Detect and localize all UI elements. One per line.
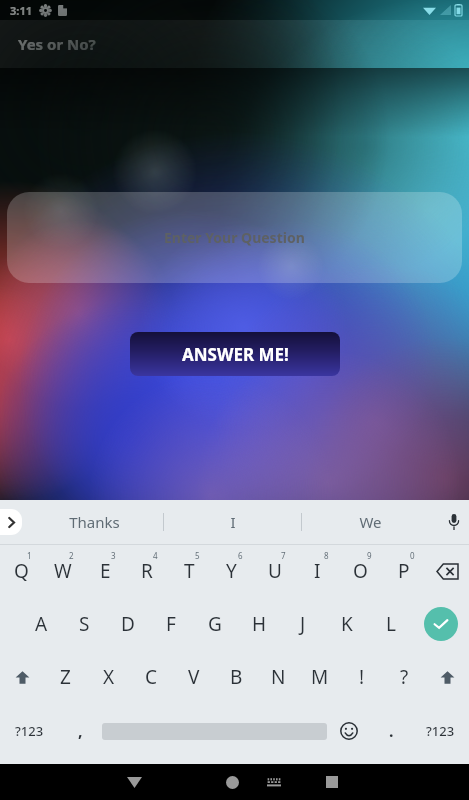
staticText: G (208, 611, 222, 637)
staticText: B (230, 664, 243, 690)
staticText: 3:11 (10, 3, 32, 18)
button[interactable]: T (168, 545, 210, 597)
staticText: 6 (238, 550, 243, 561)
button[interactable]: J (281, 597, 325, 651)
button[interactable]: L (369, 597, 413, 651)
staticText: Enter Your Question (164, 228, 305, 247)
staticText: F (166, 611, 176, 637)
button[interactable]: I (164, 500, 301, 544)
staticText: ?123 (426, 722, 455, 740)
button[interactable]: Home (216, 766, 248, 798)
button[interactable]: Thanks (26, 500, 163, 544)
button[interactable]: U (253, 545, 296, 597)
staticText: S (79, 611, 90, 637)
staticText: C (145, 664, 158, 690)
button[interactable]: G (193, 597, 237, 651)
button[interactable]: Back (118, 766, 150, 798)
staticText: M (311, 664, 329, 690)
staticText: , (78, 720, 83, 742)
button[interactable]: Expand suggestions (0, 509, 22, 535)
button[interactable]: I (296, 545, 339, 597)
button[interactable]: , (58, 703, 102, 759)
button[interactable]: H (237, 597, 281, 651)
staticText: 1 (27, 550, 32, 561)
staticText: K (341, 611, 353, 637)
staticText: Q (14, 558, 29, 584)
staticText: D (121, 611, 135, 637)
button[interactable]: Shift (425, 651, 469, 703)
button[interactable]: R (126, 545, 168, 597)
button[interactable]: ?123 (0, 703, 58, 759)
staticText: R (141, 558, 153, 584)
staticText: I (230, 512, 236, 532)
button[interactable]: Z (44, 651, 87, 703)
button[interactable]: Emoji (327, 703, 371, 759)
staticText: T (184, 558, 195, 584)
staticText: Yes or No? (18, 34, 96, 54)
staticText: 8 (324, 550, 329, 561)
staticText: N (271, 664, 286, 690)
staticText: I (314, 558, 321, 584)
staticText: H (252, 611, 267, 637)
button[interactable]: F (149, 597, 193, 651)
staticText: We (359, 512, 382, 532)
button[interactable]: Space (102, 703, 327, 759)
button[interactable]: ANSWER ME! (130, 332, 340, 376)
staticText: ANSWER ME! (182, 343, 289, 366)
button[interactable]: X (87, 651, 130, 703)
button[interactable]: D (106, 597, 149, 651)
button[interactable]: ?123 (411, 703, 469, 759)
button[interactable]: P (382, 545, 425, 597)
staticText: Y (226, 558, 237, 584)
button[interactable]: Recent apps (316, 766, 348, 798)
staticText: ? (400, 664, 409, 690)
button[interactable]: We (302, 500, 439, 544)
button[interactable]: . (371, 703, 411, 759)
button[interactable]: Y (210, 545, 253, 597)
staticText: W (54, 558, 72, 584)
staticText: 2 (69, 550, 74, 561)
button[interactable]: Enter (413, 597, 469, 651)
button[interactable]: Enter Your Question (7, 192, 462, 283)
staticText: Thanks (69, 512, 120, 532)
staticText: Z (60, 664, 71, 690)
button[interactable]: E (84, 545, 126, 597)
staticText: J (300, 611, 306, 637)
staticText: U (268, 558, 282, 584)
staticText: O (353, 558, 368, 584)
button[interactable]: Shift (0, 651, 44, 703)
staticText: A (35, 611, 48, 637)
button[interactable]: ? (383, 651, 425, 703)
staticText: P (398, 558, 410, 584)
button[interactable]: K (325, 597, 369, 651)
staticText: 9 (367, 550, 372, 561)
staticText: 3 (111, 550, 116, 561)
staticText: E (100, 558, 111, 584)
button[interactable]: B (215, 651, 257, 703)
button[interactable]: O (339, 545, 382, 597)
button[interactable]: Voice input (439, 507, 469, 537)
button[interactable]: C (130, 651, 173, 703)
button[interactable]: M (299, 651, 341, 703)
button[interactable]: ! (341, 651, 383, 703)
staticText: ?123 (15, 722, 44, 740)
staticText: 5 (195, 550, 200, 561)
staticText: . (389, 720, 394, 742)
button[interactable]: S (63, 597, 106, 651)
staticText: 7 (281, 550, 286, 561)
staticText: L (386, 611, 396, 637)
button[interactable]: W (42, 545, 84, 597)
button[interactable]: N (257, 651, 299, 703)
staticText: ! (359, 664, 365, 690)
staticText: 0 (410, 550, 415, 561)
staticText: X (103, 664, 115, 690)
button[interactable]: Q (0, 545, 42, 597)
button[interactable]: Switch keyboard (258, 766, 290, 798)
button[interactable]: Backspace (425, 545, 469, 597)
staticText: V (188, 664, 200, 690)
button[interactable]: A (20, 597, 63, 651)
button[interactable]: V (173, 651, 215, 703)
staticText: 4 (153, 550, 158, 561)
